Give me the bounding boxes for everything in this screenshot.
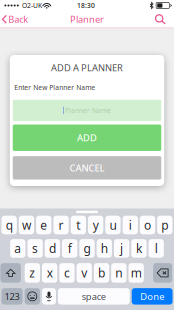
button[interactable]: space [58, 288, 130, 305]
button[interactable]: Emoji [25, 288, 40, 305]
staticText: j [120, 240, 123, 256]
button[interactable]: l [149, 239, 164, 258]
button[interactable]: x [42, 263, 57, 283]
button[interactable]: d [45, 239, 60, 258]
staticText: d [49, 240, 56, 256]
button[interactable]: s [27, 239, 43, 258]
staticText: c [64, 265, 70, 281]
staticText: m [131, 265, 142, 281]
button[interactable]: Shift [0, 263, 21, 283]
staticText: Planner [70, 13, 104, 25]
staticText: 18:30 [77, 1, 95, 10]
staticText: ADD [77, 132, 97, 144]
staticText: z [29, 265, 35, 281]
button[interactable]: Search [149, 12, 174, 26]
staticText: h [101, 240, 108, 256]
button[interactable]: a [10, 239, 25, 258]
button[interactable]: o [140, 216, 155, 234]
staticText: Enter New Planner Name [14, 83, 95, 92]
staticText: w [22, 217, 31, 233]
button[interactable]: i [123, 216, 138, 234]
staticText: e [40, 217, 47, 233]
button[interactable]: q [1, 216, 17, 234]
staticText: n [115, 265, 122, 281]
button[interactable]: g [79, 239, 95, 258]
staticText: a [14, 240, 21, 256]
staticText: 123 [5, 290, 20, 303]
button[interactable]: Dictation [42, 288, 56, 305]
staticText: o [144, 217, 151, 233]
staticText: s [32, 240, 38, 256]
button[interactable]: y [88, 216, 103, 234]
button[interactable]: z [25, 263, 40, 283]
staticText: l [155, 240, 158, 256]
staticText: g [83, 240, 90, 256]
staticText: Planner Name [65, 106, 111, 115]
button[interactable]: Done [132, 288, 173, 305]
staticText: v [81, 265, 87, 281]
button[interactable]: p [157, 216, 172, 234]
staticText: q [6, 217, 13, 233]
button[interactable]: f [62, 239, 77, 258]
button[interactable]: r [53, 216, 69, 234]
button[interactable]: j [114, 239, 129, 258]
staticText: ADD A PLANNER [51, 61, 123, 74]
staticText: k [136, 240, 142, 256]
button[interactable]: 123 [1, 288, 23, 305]
staticText: x [47, 265, 53, 281]
staticText: f [68, 240, 72, 256]
button[interactable]: w [19, 216, 34, 234]
button[interactable]: e [36, 216, 51, 234]
staticText: y [93, 217, 99, 233]
button[interactable]: k [131, 239, 146, 258]
button[interactable]: m [128, 263, 144, 283]
staticText: p [161, 217, 168, 233]
button[interactable]: t [71, 216, 86, 234]
staticText: r [59, 217, 64, 233]
button[interactable]: u [105, 216, 121, 234]
button[interactable]: c [59, 263, 75, 283]
staticText: space [82, 290, 106, 303]
staticText: i [129, 217, 132, 233]
button[interactable]: CANCEL [13, 156, 161, 179]
staticText: u [109, 217, 116, 233]
staticText: t [76, 217, 80, 233]
staticText: Done [140, 290, 164, 303]
button[interactable]: Back [0, 10, 32, 28]
staticText: Back [8, 13, 28, 25]
staticText: O2-UK [22, 1, 42, 10]
staticText: b [98, 265, 105, 281]
button[interactable]: b [94, 263, 109, 283]
button[interactable]: n [111, 263, 126, 283]
button[interactable]: h [97, 239, 112, 258]
button[interactable]: Backspace [153, 263, 172, 283]
button[interactable]: ADD [13, 124, 161, 151]
staticText: CANCEL [69, 162, 104, 174]
button[interactable]: v [77, 263, 92, 283]
